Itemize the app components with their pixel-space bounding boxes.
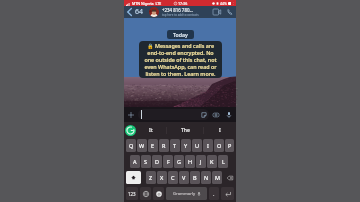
- staticText: J: [200, 158, 202, 165]
- button[interactable]: H: [185, 155, 195, 168]
- staticText: P: [228, 142, 232, 149]
- staticText: I: [219, 127, 221, 134]
- staticText: N: [204, 174, 209, 181]
- button[interactable]: Back: [124, 6, 145, 18]
- button[interactable]: G: [174, 155, 184, 168]
- button[interactable]: Backspace: [223, 171, 236, 184]
- button[interactable]: Sticker: [199, 110, 208, 119]
- staticText: W: [139, 142, 145, 149]
- staticText: T: [173, 142, 177, 149]
- button[interactable]: F: [163, 155, 173, 168]
- staticText: It: [149, 127, 153, 134]
- staticText: 123: [128, 191, 136, 197]
- button[interactable]: Z: [146, 171, 156, 184]
- button[interactable]: I: [204, 122, 236, 138]
- button[interactable]: Camera: [209, 107, 222, 122]
- staticText: tap here to add to contacts: [162, 13, 199, 17]
- staticText: L: [222, 158, 225, 165]
- button[interactable]: E: [148, 139, 158, 152]
- button[interactable]: I: [203, 139, 213, 152]
- button[interactable]: N: [201, 171, 211, 184]
- button[interactable]: P: [225, 139, 234, 152]
- staticText: Y: [184, 142, 188, 149]
- button[interactable]: V: [179, 171, 189, 184]
- staticText: R: [162, 142, 166, 149]
- button[interactable]: Space: [166, 187, 207, 200]
- button[interactable]: Voice message: [222, 107, 236, 122]
- button[interactable]: W: [137, 139, 147, 152]
- button[interactable]: Change language: [140, 187, 151, 200]
- staticText: .: [213, 190, 215, 197]
- button[interactable]: J: [196, 155, 206, 168]
- staticText: U: [195, 142, 200, 149]
- button[interactable]: Y: [181, 139, 191, 152]
- button[interactable]: T: [170, 139, 180, 152]
- staticText: Today: [173, 31, 188, 38]
- button[interactable]: M: [212, 171, 222, 184]
- staticText: V: [182, 174, 186, 181]
- staticText: B: [193, 174, 197, 181]
- staticText: A: [133, 158, 137, 165]
- button[interactable]: L: [218, 155, 228, 168]
- button[interactable]: B: [190, 171, 200, 184]
- button[interactable]: It: [136, 122, 166, 138]
- button[interactable]: C: [168, 171, 178, 184]
- staticText: 44%: [220, 1, 227, 6]
- staticText: H: [188, 158, 193, 165]
- staticText: 🔒 Messages and calls are end-to-end encr…: [144, 42, 217, 77]
- button[interactable]: The: [167, 122, 203, 138]
- staticText: S: [144, 158, 148, 165]
- button[interactable]: S: [141, 155, 151, 168]
- button[interactable]: Q: [126, 139, 136, 152]
- staticText: O: [217, 142, 222, 149]
- staticText: MTN Nigeria LTE: [132, 1, 162, 6]
- staticText: E: [151, 142, 155, 149]
- staticText: K: [210, 158, 214, 165]
- button[interactable]: D: [152, 155, 162, 168]
- staticText: I: [207, 142, 209, 149]
- staticText: Z: [149, 174, 153, 181]
- staticText: Q: [129, 142, 134, 149]
- staticText: G: [177, 158, 182, 165]
- button[interactable]: A: [130, 155, 140, 168]
- button[interactable]: U: [192, 139, 202, 152]
- staticText: 17:36: [178, 1, 188, 6]
- staticText: M: [215, 174, 220, 181]
- staticText: C: [171, 174, 175, 181]
- button[interactable]: 123: [126, 187, 138, 200]
- staticText: X: [160, 174, 164, 181]
- button[interactable]: Video call: [211, 6, 223, 18]
- staticText: +234 816 780...: [162, 7, 193, 13]
- button[interactable]: Shift: [126, 171, 141, 184]
- staticText: F: [167, 158, 170, 165]
- staticText: Grammarly: [173, 191, 196, 197]
- button[interactable]: Grammarly: [125, 125, 136, 136]
- staticText: The: [181, 127, 190, 134]
- button[interactable]: K: [207, 155, 217, 168]
- button[interactable]: Voice call: [223, 6, 236, 18]
- button[interactable]: O: [214, 139, 224, 152]
- button[interactable]: Emoji: [153, 187, 164, 200]
- button[interactable]: Enter: [221, 187, 234, 200]
- button[interactable]: .: [209, 187, 219, 200]
- staticText: 64: [135, 7, 144, 17]
- staticText: D: [155, 158, 160, 165]
- button[interactable]: R: [159, 139, 169, 152]
- button[interactable]: Attach: [124, 107, 138, 122]
- button[interactable]: X: [157, 171, 167, 184]
